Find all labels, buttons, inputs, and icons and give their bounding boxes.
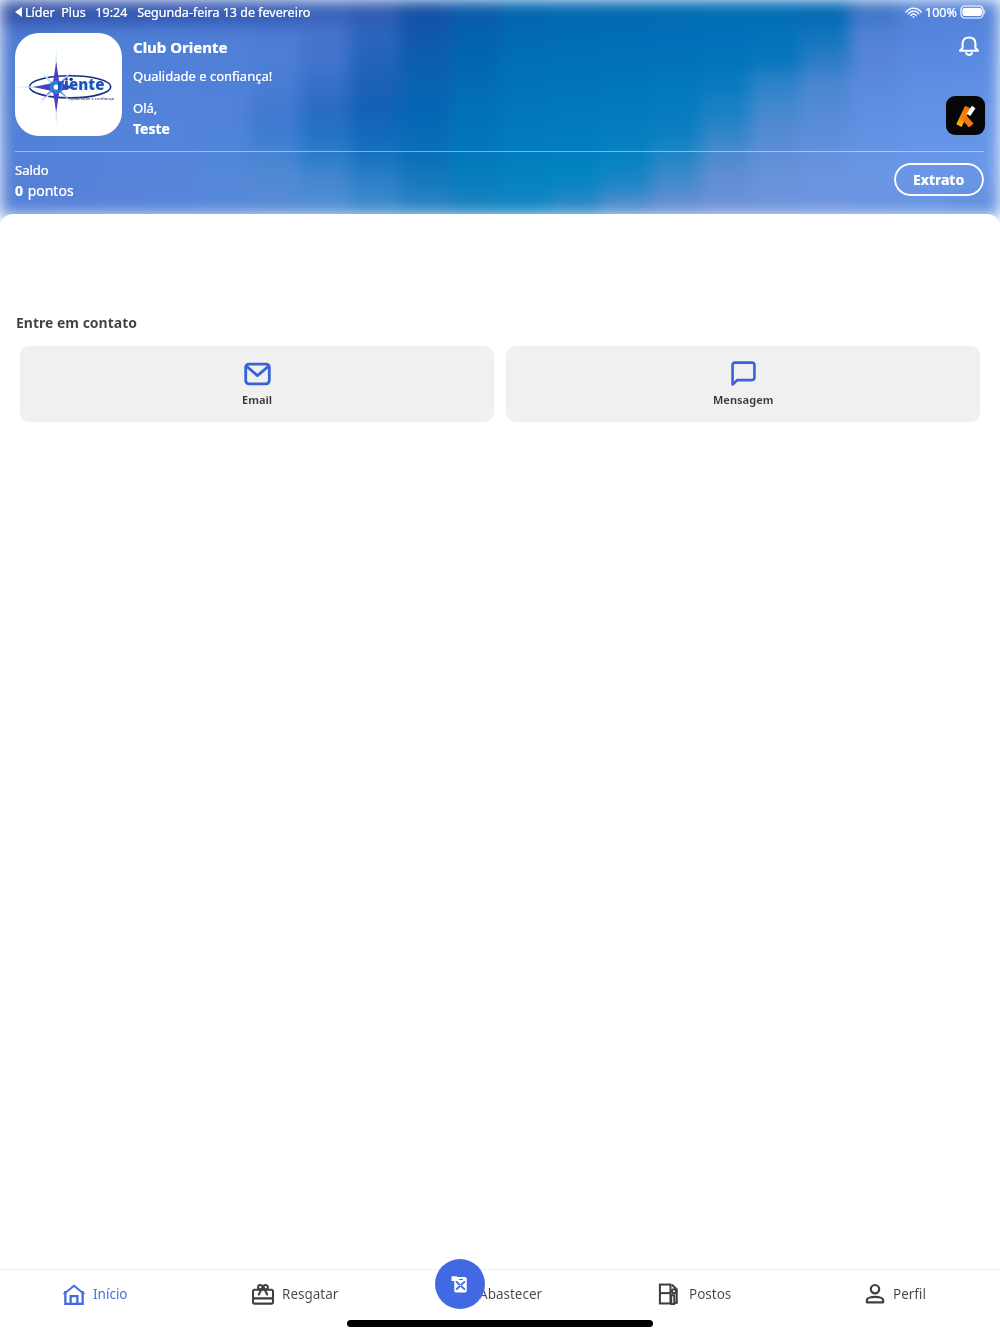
- staticText: Saldo: [15, 161, 49, 179]
- staticText: Olá,: [133, 99, 158, 117]
- staticText: 0: [15, 181, 24, 200]
- staticText: Qualidade e confiança!: [133, 67, 273, 85]
- button[interactable]: Início: [0, 1270, 195, 1318]
- staticText: pontos: [24, 181, 74, 200]
- staticText: Líder Plus 19:24 Segunda-feira 13 de fev…: [25, 4, 311, 21]
- staticText: Postos: [689, 1285, 732, 1303]
- staticText: Resgatar: [282, 1285, 339, 1303]
- staticText: 100%: [925, 4, 957, 21]
- button[interactable]: Abastecer: [435, 1259, 485, 1309]
- button[interactable]: Extrato: [894, 163, 984, 196]
- staticText: Teste: [133, 119, 170, 138]
- button[interactable]: Postos: [595, 1270, 795, 1318]
- staticText: Club Oriente: [133, 37, 228, 57]
- staticText: Perfil: [893, 1285, 926, 1303]
- button[interactable]: Resgatar: [195, 1270, 395, 1318]
- button[interactable]: Mensagem: [506, 346, 980, 422]
- button[interactable]: Abrir aplicativo: [946, 96, 985, 135]
- staticText: Início: [93, 1285, 128, 1303]
- button[interactable]: Perfil: [795, 1270, 995, 1318]
- button[interactable]: Email: [20, 346, 494, 422]
- button[interactable]: Notificações: [952, 30, 986, 64]
- staticText: Extrato: [913, 170, 965, 189]
- staticText: riente: [57, 74, 105, 94]
- staticText: Mensagem: [713, 392, 774, 407]
- staticText: Qualidade e confiança: [70, 96, 115, 101]
- staticText: Entre em contato: [16, 313, 138, 332]
- staticText: Abastecer: [479, 1285, 543, 1303]
- staticText: Email: [242, 392, 273, 407]
- button[interactable]: Abastecer: [395, 1270, 595, 1318]
